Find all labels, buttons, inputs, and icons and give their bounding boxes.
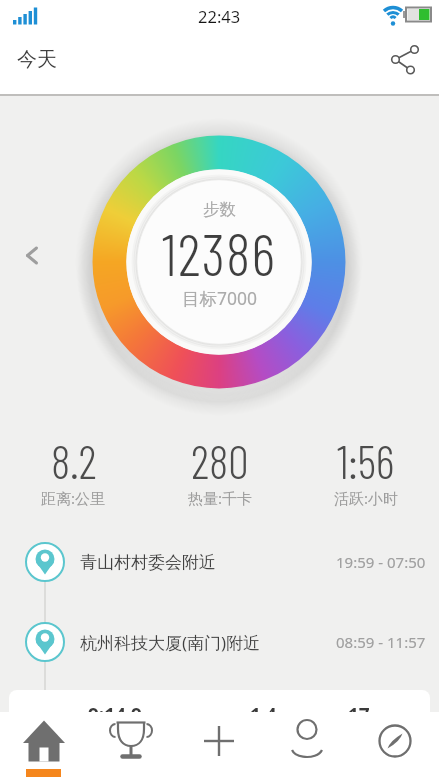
staticText: 22:43 [198,5,241,27]
button[interactable]: 青山村村委会附近 [80,540,426,584]
staticText: 8.2 [51,433,97,488]
button[interactable]: 280 [147,433,293,508]
staticText: 今天 [17,47,57,72]
button[interactable]: 杭州科技大厦(南门)附近 [80,620,426,664]
staticText: 步数 [203,199,236,220]
button[interactable]: 9:14 9 [9,690,430,750]
button[interactable]: 今天 [17,47,57,72]
button[interactable] [263,712,351,780]
staticText: 9:14 9 [88,702,142,728]
staticText: 19:59 - 07:50 [336,552,426,572]
staticText: 17 [348,702,370,728]
button[interactable] [351,712,439,780]
staticText: 距离:公里 [41,488,106,508]
staticText: 热量:千卡 [188,488,253,508]
staticText: 12386 [162,218,277,288]
staticText: 08:59 - 11:57 [336,632,426,652]
button[interactable] [87,712,175,780]
staticText: 1:56 [337,433,395,488]
button[interactable]: 1:56 [293,433,439,508]
staticText: 280 [191,433,249,488]
staticText: 活跃:小时 [334,488,399,508]
button[interactable] [384,42,428,82]
staticText: 1 4 [250,702,277,728]
button[interactable] [0,712,87,780]
button[interactable] [175,712,263,780]
button[interactable] [14,234,56,278]
staticText: 青山村村委会附近 [80,552,216,573]
button[interactable]: 8.2 [0,433,147,508]
staticText: 杭州科技大厦(南门)附近 [80,631,261,654]
staticText: 目标7000 [182,286,258,310]
